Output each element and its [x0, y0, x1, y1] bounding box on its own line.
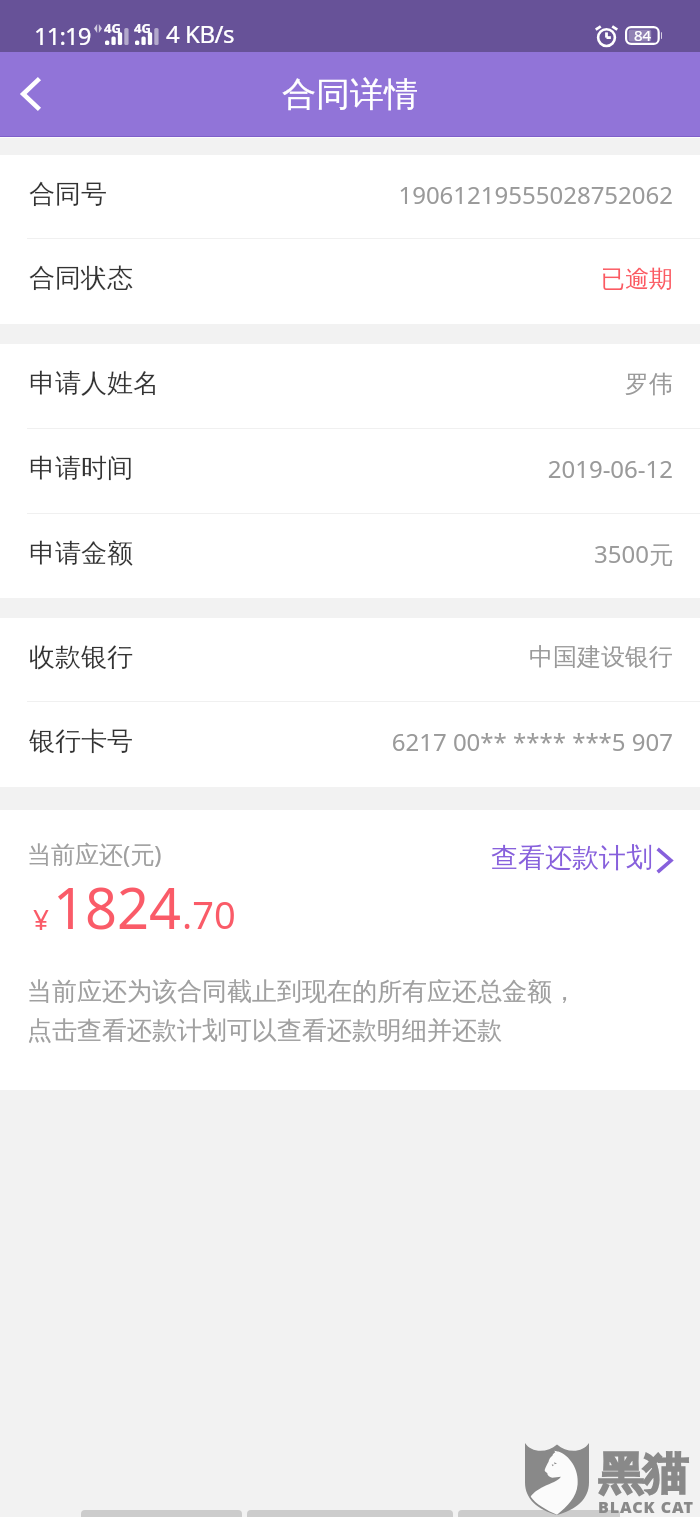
staticText: 收款银行: [29, 641, 133, 674]
staticText: 2019-06-12: [547, 452, 673, 485]
staticText: 合同详情: [282, 73, 418, 116]
staticText: 84: [634, 25, 652, 44]
staticText: 合同号: [29, 178, 107, 211]
staticText: 银行卡号: [29, 725, 133, 758]
staticText: 查看还款计划: [491, 841, 653, 875]
staticText: 3500元: [594, 537, 673, 570]
button[interactable]: 申请金额: [0, 514, 700, 598]
button[interactable]: 收款银行: [0, 618, 700, 702]
staticText: 19061219555028752062: [398, 178, 673, 211]
staticText: 罗伟: [625, 369, 673, 399]
staticText: 已逾期: [601, 264, 673, 294]
button[interactable]: Back: [1, 65, 59, 123]
staticText: 申请时间: [29, 452, 133, 485]
staticText: 4G: [134, 19, 151, 37]
button[interactable]: 银行卡号: [0, 702, 700, 787]
button[interactable]: Navigation: [458, 1510, 620, 1517]
staticText: 中国建设银行: [529, 642, 673, 672]
staticText: 11:19: [34, 19, 91, 52]
button[interactable]: 查看还款计划: [483, 835, 685, 881]
staticText: .70: [182, 888, 236, 940]
button[interactable]: 申请人姓名: [0, 344, 700, 429]
staticText: BLACK CAT: [598, 1496, 694, 1517]
staticText: ¥: [33, 900, 50, 938]
button[interactable]: 合同号: [0, 155, 700, 239]
button[interactable]: 合同状态: [0, 239, 700, 324]
staticText: 1824: [53, 869, 182, 945]
staticText: 申请人姓名: [29, 367, 159, 400]
staticText: 合同状态: [29, 262, 133, 295]
button[interactable]: 申请时间: [0, 429, 700, 514]
staticText: 黑猫: [598, 1446, 688, 1503]
staticText: 当前应还(元): [27, 837, 162, 870]
staticText: 4 KB/s: [166, 17, 234, 50]
staticText: 6217 00** **** ***5 907: [391, 725, 673, 758]
staticText: 申请金额: [29, 537, 133, 570]
staticText: 4G: [104, 19, 121, 37]
staticText: 当前应还为该合同截止到现在的所有应还总金额， 点击查看还款计划可以查看还款明细并…: [27, 976, 577, 1047]
